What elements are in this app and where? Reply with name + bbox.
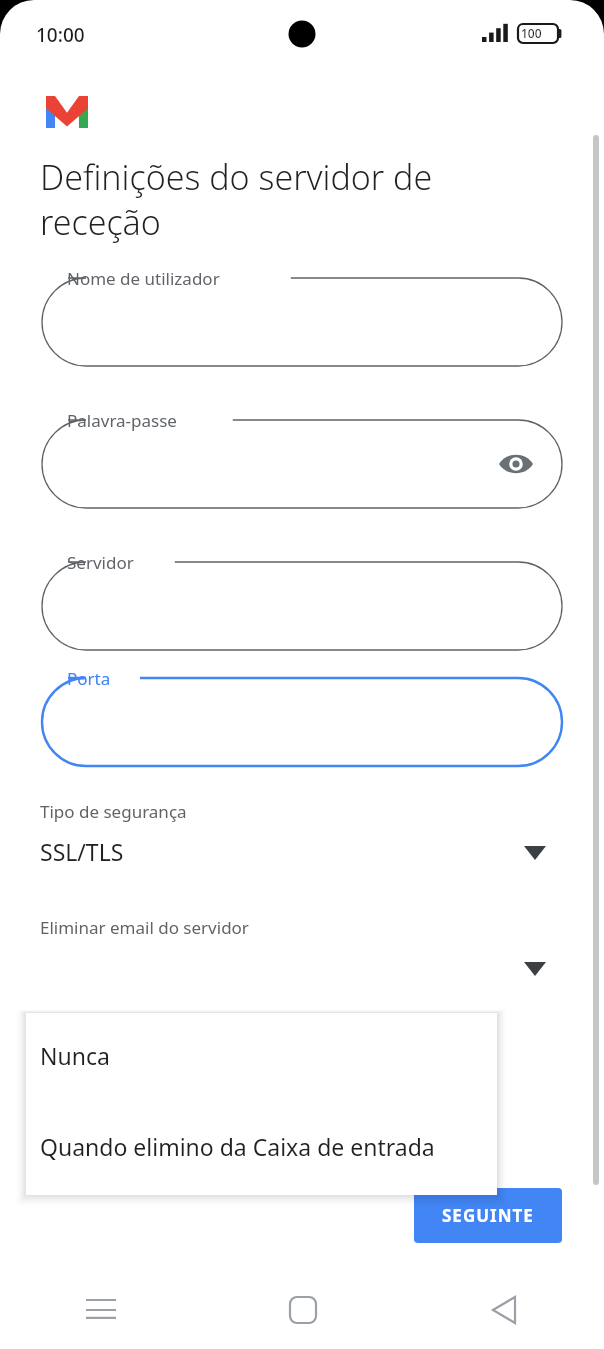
button[interactable]: Mostrar palavra-passe (492, 440, 540, 488)
staticText: 100 (521, 25, 542, 41)
staticText: Quando elimino da Caixa de entrada (40, 1131, 435, 1162)
button[interactable]: Voltar (403, 1270, 604, 1349)
staticText: SSL/TLS (40, 836, 124, 867)
staticText: Porta (67, 667, 111, 690)
button[interactable]: Início (202, 1270, 403, 1349)
staticText: 10:00 (36, 22, 85, 48)
button[interactable]: Nunca (26, 1013, 497, 1104)
button[interactable]: Servidor (42, 562, 562, 650)
button[interactable]: Eliminar email do servidor (0, 912, 604, 1004)
button[interactable]: Recentes (0, 1270, 202, 1349)
button[interactable]: Quando elimino da Caixa de entrada (26, 1104, 497, 1195)
staticText: Nunca (40, 1040, 110, 1071)
button[interactable]: Tipo de segurança (0, 796, 604, 888)
button[interactable]: Mostrar palavra-passe (42, 420, 562, 508)
staticText: Definições do servidor de receção (40, 154, 540, 244)
staticText: Eliminar email do servidor (40, 916, 249, 939)
button[interactable]: Nome de utilizador (42, 278, 562, 366)
staticText: SEGUINTE (442, 1204, 534, 1227)
staticText: Palavra-passe (67, 409, 177, 432)
button[interactable]: SEGUINTE (414, 1188, 562, 1243)
button[interactable]: Porta (42, 678, 562, 766)
staticText: Tipo de segurança (40, 800, 187, 823)
staticText: Servidor (67, 551, 134, 574)
staticText: Nome de utilizador (67, 267, 220, 290)
